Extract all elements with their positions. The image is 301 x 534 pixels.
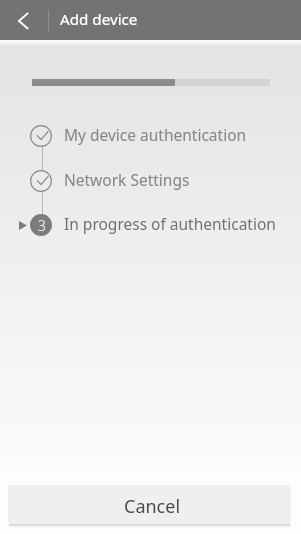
- staticText: 3: [38, 216, 46, 235]
- button[interactable]: Cancel: [8, 485, 291, 524]
- staticText: Add device: [60, 9, 138, 30]
- staticText: My device authentication: [64, 124, 247, 145]
- staticText: In progress of authentication: [64, 213, 276, 234]
- button[interactable]: My device authentication: [0, 114, 301, 158]
- button[interactable]: Network Settings: [0, 159, 301, 203]
- staticText: Cancel: [124, 494, 181, 519]
- button[interactable]: 3: [0, 203, 301, 247]
- staticText: Network Settings: [64, 169, 190, 190]
- button[interactable]: Back: [0, 0, 44, 40]
